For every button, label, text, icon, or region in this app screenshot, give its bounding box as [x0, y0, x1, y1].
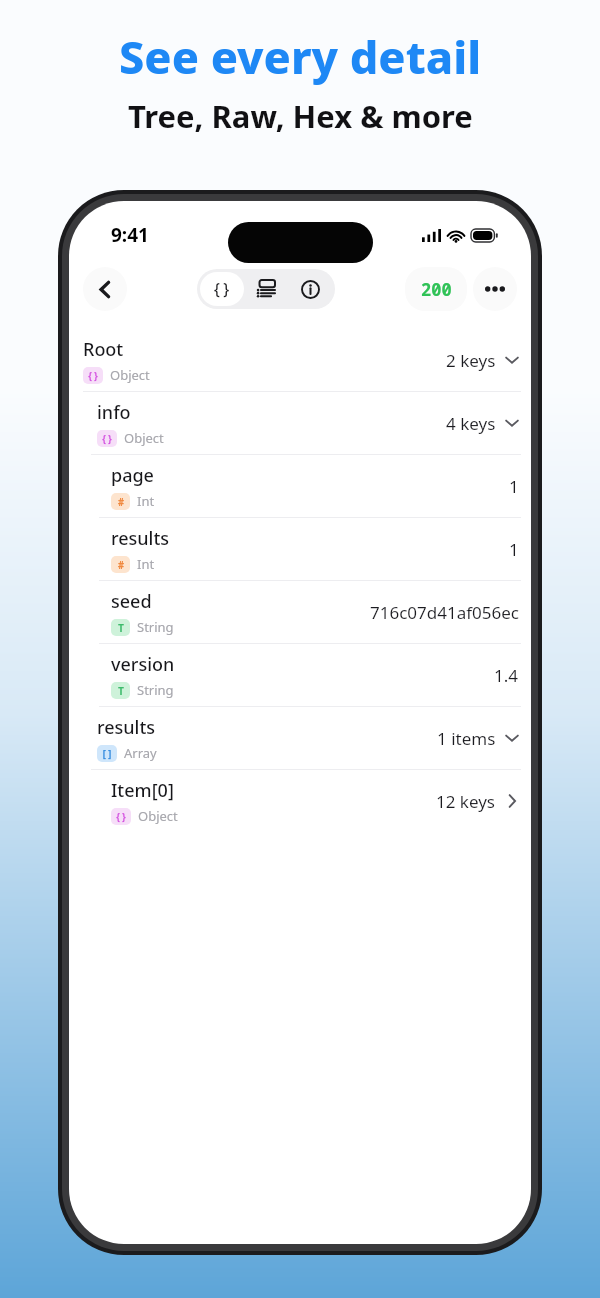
- staticText: info: [97, 400, 131, 425]
- staticText: 200: [421, 278, 452, 301]
- button[interactable]: version: [69, 644, 531, 706]
- staticText: page: [111, 463, 154, 488]
- button[interactable]: results: [69, 518, 531, 580]
- staticText: T: [118, 621, 124, 635]
- staticText: results: [111, 526, 170, 551]
- staticText: Object: [138, 807, 178, 825]
- staticText: 1: [509, 475, 519, 498]
- button[interactable]: Back: [83, 267, 127, 311]
- staticText: Object: [124, 429, 164, 447]
- button[interactable]: Root: [69, 329, 531, 391]
- staticText: Array: [124, 744, 157, 762]
- button[interactable]: Info: [288, 272, 332, 306]
- staticText: Tree, Raw, Hex & more: [128, 95, 473, 137]
- staticText: 2 keys: [446, 349, 496, 372]
- button[interactable]: page: [69, 455, 531, 517]
- staticText: 9:41: [111, 222, 149, 248]
- staticText: version: [111, 652, 175, 677]
- staticText: 1: [509, 538, 519, 561]
- button[interactable]: Item[0]: [69, 770, 531, 832]
- staticText: {}: [212, 278, 232, 300]
- button[interactable]: More options: [473, 267, 517, 311]
- button[interactable]: info: [69, 392, 531, 454]
- staticText: #: [118, 495, 124, 509]
- staticText: Int: [137, 555, 155, 573]
- staticText: String: [137, 618, 174, 636]
- staticText: 4 keys: [446, 412, 496, 435]
- staticText: seed: [111, 589, 152, 614]
- staticText: {}: [115, 810, 127, 824]
- staticText: 12 keys: [436, 790, 496, 813]
- staticText: 716c07d41af056ec: [370, 601, 519, 624]
- staticText: results: [97, 715, 156, 740]
- staticText: {}: [101, 432, 113, 446]
- staticText: 1 items: [437, 727, 496, 750]
- button[interactable]: Tree view: [200, 272, 244, 306]
- button[interactable]: 200: [405, 267, 467, 311]
- staticText: Int: [137, 492, 155, 510]
- button[interactable]: results: [69, 707, 531, 769]
- staticText: []: [101, 747, 113, 761]
- staticText: See every detail: [119, 26, 482, 87]
- staticText: 1.4: [494, 664, 519, 687]
- button[interactable]: Raw view: [244, 272, 288, 306]
- staticText: Root: [83, 337, 124, 362]
- staticText: String: [137, 681, 174, 699]
- staticText: Item[0]: [111, 778, 174, 803]
- staticText: #: [118, 558, 124, 572]
- staticText: Object: [110, 366, 150, 384]
- staticText: T: [118, 684, 124, 698]
- staticText: {}: [87, 369, 99, 383]
- button[interactable]: seed: [69, 581, 531, 643]
